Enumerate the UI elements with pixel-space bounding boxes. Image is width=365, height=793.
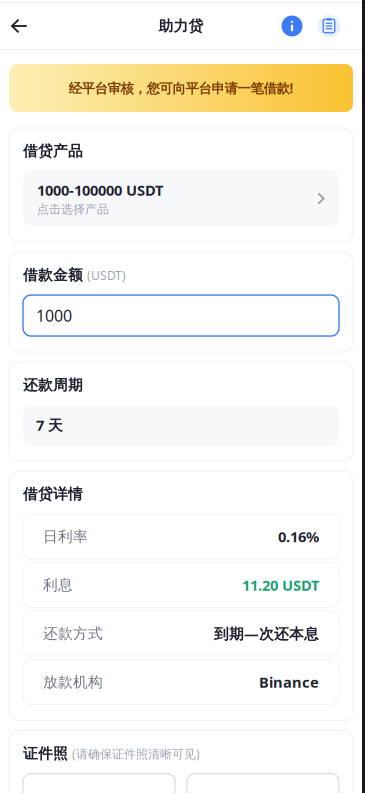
button[interactable]: Upload ID photo	[187, 774, 339, 793]
staticText: 到期—次还本息	[214, 624, 319, 643]
staticText: 放款机构	[43, 673, 103, 691]
staticText: 点击选择产品	[37, 202, 109, 217]
staticText: 经平台审核，您可向平台申请一笔借款!	[68, 79, 293, 97]
staticText: 7 天	[36, 415, 63, 435]
staticText: 证件照	[23, 745, 68, 763]
button[interactable]: Info	[271, 2, 313, 50]
button[interactable]: 1000-100000 USDT	[23, 171, 339, 226]
staticText: 利息	[43, 576, 73, 594]
staticText: 还款周期	[23, 376, 83, 394]
staticText: 0.16%	[278, 527, 319, 546]
staticText: 借贷产品	[23, 142, 83, 160]
staticText: 11.20 USDT	[242, 575, 319, 595]
staticText: 借贷详情	[23, 485, 83, 503]
staticText: 还款方式	[43, 625, 103, 643]
staticText: 1000	[36, 305, 72, 326]
button[interactable]: Back	[0, 2, 40, 50]
staticText: (USDT)	[87, 267, 126, 283]
staticText: 1000-100000 USDT	[37, 180, 163, 200]
staticText: 助力贷	[158, 17, 203, 35]
staticText: Binance	[259, 672, 319, 692]
staticText: (请确保证件照清晰可见)	[72, 746, 200, 762]
button[interactable]: Upload ID photo	[23, 774, 175, 793]
staticText: 借款金额	[23, 266, 83, 284]
button[interactable]: Loan records	[313, 2, 345, 50]
staticText: 日利率	[43, 528, 88, 546]
